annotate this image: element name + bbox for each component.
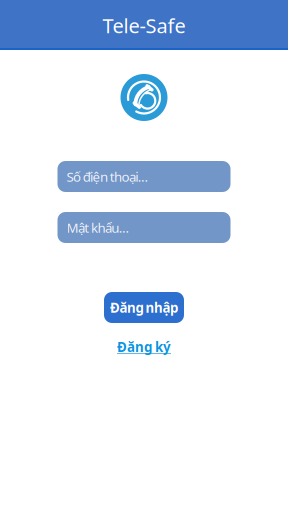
button[interactable]: Đăng nhập [104,292,184,323]
staticText: Mật khẩu... [66,219,129,236]
staticText: Đăng ký [117,338,171,356]
staticText: Số điện thoại... [66,168,148,185]
staticText: Đăng nhập [110,299,178,316]
button[interactable]: Đăng ký [113,336,175,358]
staticText: Tele-Safe [102,12,185,39]
